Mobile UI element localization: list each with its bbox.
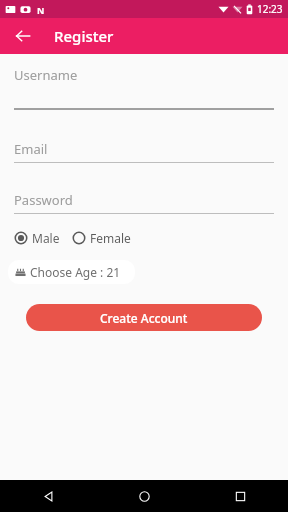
staticText: Password	[14, 191, 73, 209]
button[interactable]: Female	[70, 228, 133, 248]
button[interactable]: Male	[12, 228, 62, 248]
button[interactable]: Back	[10, 23, 36, 49]
button[interactable]: Back	[0, 480, 96, 512]
staticText: Username	[14, 66, 78, 84]
button[interactable]: Choose Age : 21	[8, 260, 135, 284]
button[interactable]: Create Account	[26, 304, 262, 331]
button[interactable]: Home	[96, 480, 192, 512]
staticText: Male	[32, 230, 60, 246]
staticText: Create Account	[100, 310, 188, 326]
staticText: Email	[14, 140, 48, 158]
staticText: Choose Age : 21	[30, 264, 121, 280]
staticText: Female	[90, 230, 131, 246]
staticText: N	[37, 4, 45, 15]
staticText: 12:23	[257, 2, 283, 16]
button[interactable]: Recent apps	[192, 480, 288, 512]
staticText: Register	[54, 26, 114, 46]
